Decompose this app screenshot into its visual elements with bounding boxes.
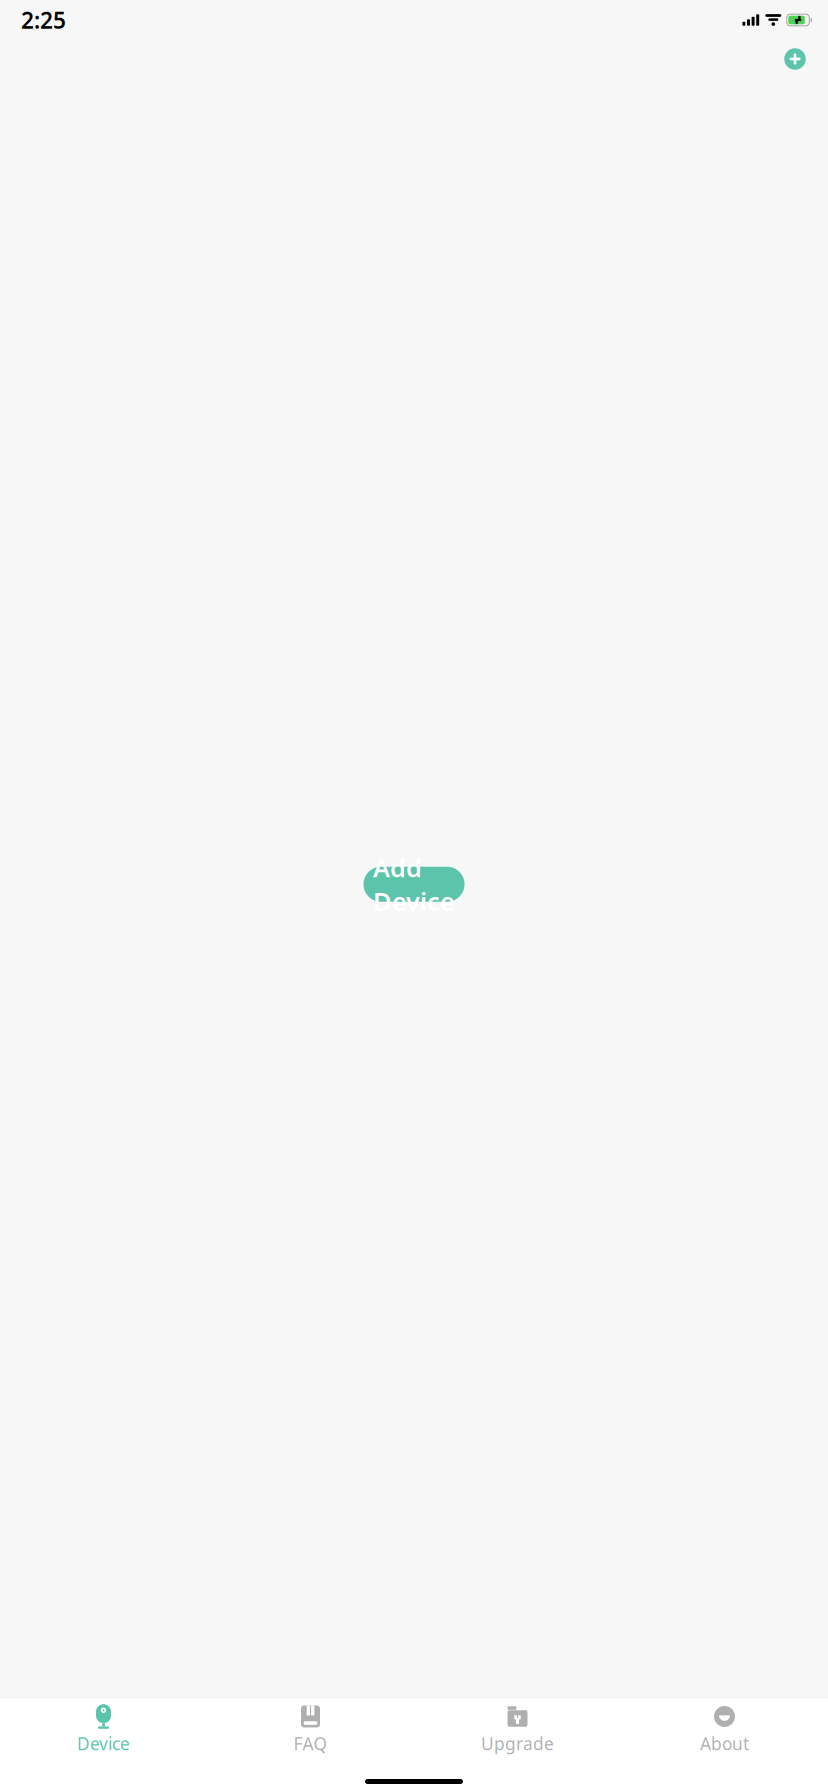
button[interactable]: Add Device xyxy=(363,867,464,902)
staticText: Device xyxy=(77,1732,130,1755)
button[interactable]: FAQ xyxy=(207,1698,414,1760)
staticText: About xyxy=(700,1732,749,1755)
staticText: 2:25 xyxy=(21,5,66,35)
button[interactable]: Upgrade xyxy=(414,1698,621,1760)
staticText: Add Device xyxy=(373,851,455,918)
staticText: Upgrade xyxy=(481,1732,554,1755)
button[interactable]: About xyxy=(621,1698,828,1760)
button[interactable]: Device xyxy=(0,1698,207,1760)
button[interactable]: Add device xyxy=(775,39,815,79)
staticText: FAQ xyxy=(293,1732,327,1755)
